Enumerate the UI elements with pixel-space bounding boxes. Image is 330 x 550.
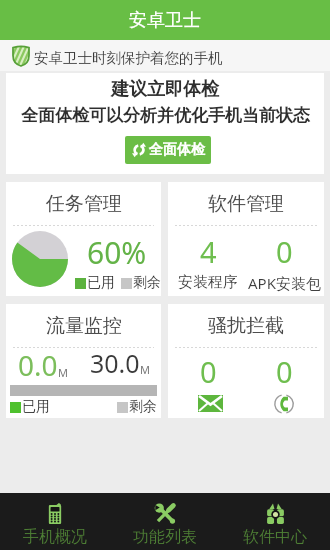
- button[interactable]: 任务管理: [6, 182, 161, 296]
- staticText: 30.0: [90, 346, 140, 380]
- staticText: 0: [200, 352, 217, 391]
- staticText: 全面体检可以分析并优化手机当前状态: [21, 105, 310, 126]
- staticText: 全面体检: [149, 141, 205, 159]
- staticText: 安装程序: [178, 273, 238, 292]
- staticText: 60%: [87, 232, 147, 273]
- other: Blocked calls: [274, 395, 294, 413]
- button[interactable]: 骚扰拦截: [168, 304, 324, 418]
- staticText: 安卓卫士: [129, 9, 201, 32]
- staticText: 骚扰拦截: [208, 314, 284, 338]
- staticText: 已用: [22, 398, 50, 416]
- staticText: M: [140, 362, 150, 377]
- other: Blocked messages: [198, 395, 223, 412]
- staticText: M: [58, 365, 68, 380]
- staticText: APK安装包: [248, 273, 321, 292]
- button[interactable]: 手机概况: [0, 493, 110, 550]
- staticText: 任务管理: [46, 192, 122, 216]
- button[interactable]: 流量监控: [6, 304, 161, 418]
- staticText: 软件管理: [208, 192, 284, 216]
- button[interactable]: 软件管理: [168, 182, 324, 296]
- button[interactable]: 软件中心: [220, 493, 330, 550]
- staticText: 剩余: [133, 274, 161, 292]
- staticText: 建议立即体检: [111, 78, 219, 101]
- button[interactable]: 功能列表: [110, 493, 220, 550]
- staticText: 手机概况: [23, 527, 87, 547]
- button[interactable]: 全面体检: [125, 136, 211, 164]
- staticText: 0: [276, 352, 293, 391]
- staticText: 流量监控: [46, 314, 122, 338]
- staticText: 4: [200, 232, 217, 271]
- staticText: 已用: [87, 274, 115, 292]
- staticText: 功能列表: [133, 527, 197, 547]
- staticText: 0.0: [18, 346, 58, 384]
- staticText: 安卓卫士时刻保护着您的手机: [34, 49, 223, 67]
- staticText: 剩余: [129, 398, 157, 416]
- staticText: 0: [276, 232, 293, 271]
- staticText: 软件中心: [243, 527, 307, 547]
